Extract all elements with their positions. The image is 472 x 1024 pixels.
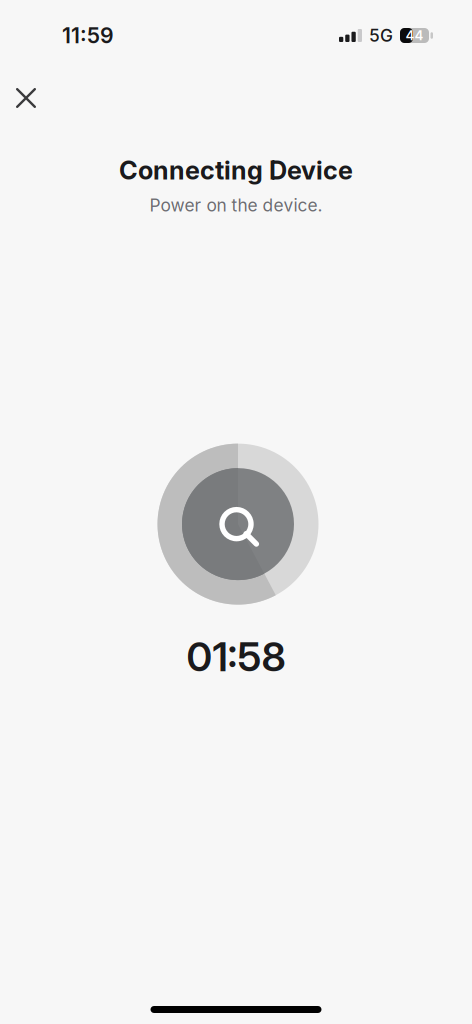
staticText: 44 bbox=[405, 27, 423, 43]
staticText: 5G bbox=[369, 25, 393, 46]
staticText: Power on the device. bbox=[149, 195, 322, 216]
button[interactable]: Close bbox=[0, 74, 52, 122]
staticText: Connecting Device bbox=[119, 155, 353, 186]
staticText: 11:59 bbox=[62, 23, 114, 48]
staticText: 01:58 bbox=[186, 633, 285, 681]
